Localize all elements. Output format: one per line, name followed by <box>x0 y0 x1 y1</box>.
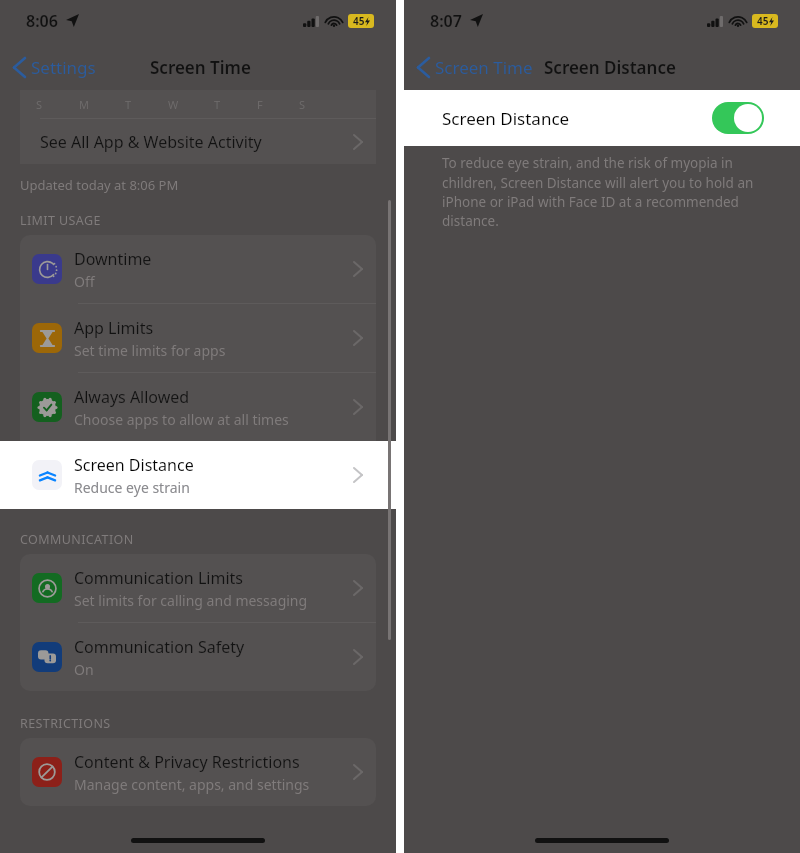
staticText: Screen Distance <box>74 454 194 476</box>
staticText: Manage content, apps, and settings <box>74 775 310 794</box>
staticText: W <box>168 97 179 112</box>
button[interactable]: Screen Distance toggle, on <box>712 102 764 134</box>
staticText: Content & Privacy Restrictions <box>74 751 300 773</box>
staticText: Updated today at 8:06 PM <box>20 176 179 194</box>
button[interactable]: Communication Safety <box>20 623 376 691</box>
staticText: Always Allowed <box>74 386 190 408</box>
staticText: Off <box>74 272 95 291</box>
staticText: Set time limits for apps <box>74 341 226 360</box>
button[interactable]: Settings <box>0 44 102 90</box>
button[interactable]: Communication Limits <box>20 554 376 622</box>
staticText: App Limits <box>74 317 154 339</box>
staticText: 45 <box>353 14 365 28</box>
staticText: T <box>125 97 132 112</box>
staticText: S <box>36 97 43 112</box>
staticText: 8:07 <box>430 10 462 32</box>
staticText: On <box>74 660 94 679</box>
staticText: T <box>214 97 221 112</box>
staticText: Settings <box>31 56 96 79</box>
staticText: M <box>79 97 89 112</box>
staticText: Communication Safety <box>74 636 245 658</box>
button[interactable]: See All App & Website Activity <box>20 119 376 164</box>
staticText: Reduce eye strain <box>74 478 190 497</box>
staticText: LIMIT USAGE <box>20 212 101 229</box>
staticText: S <box>299 97 306 112</box>
staticText: COMMUNICATION <box>20 531 134 548</box>
staticText: Screen Time <box>150 56 251 79</box>
staticText: Downtime <box>74 248 152 270</box>
staticText: Communication Limits <box>74 567 243 589</box>
button[interactable]: Downtime <box>20 235 376 303</box>
staticText: Screen Distance <box>544 56 676 79</box>
staticText: RESTRICTIONS <box>20 715 111 732</box>
button[interactable]: Content & Privacy Restrictions <box>20 738 376 806</box>
button[interactable]: App Limits <box>20 304 376 372</box>
staticText: Screen Time <box>435 56 533 79</box>
staticText: Set limits for calling and messaging <box>74 591 308 610</box>
button[interactable]: Screen Time <box>404 44 539 90</box>
staticText: 8:06 <box>26 10 58 32</box>
button[interactable]: Always Allowed <box>20 373 376 441</box>
staticText: Choose apps to allow at all times <box>74 410 289 429</box>
button[interactable]: Screen Distance <box>20 443 376 507</box>
button[interactable]: Screen Distance <box>424 94 780 142</box>
staticText: Screen Distance <box>442 107 570 130</box>
staticText: See All App & Website Activity <box>40 131 262 153</box>
staticText: F <box>257 97 263 112</box>
staticText: 45 <box>757 14 769 28</box>
staticText: To reduce eye strain, and the risk of my… <box>442 154 772 230</box>
